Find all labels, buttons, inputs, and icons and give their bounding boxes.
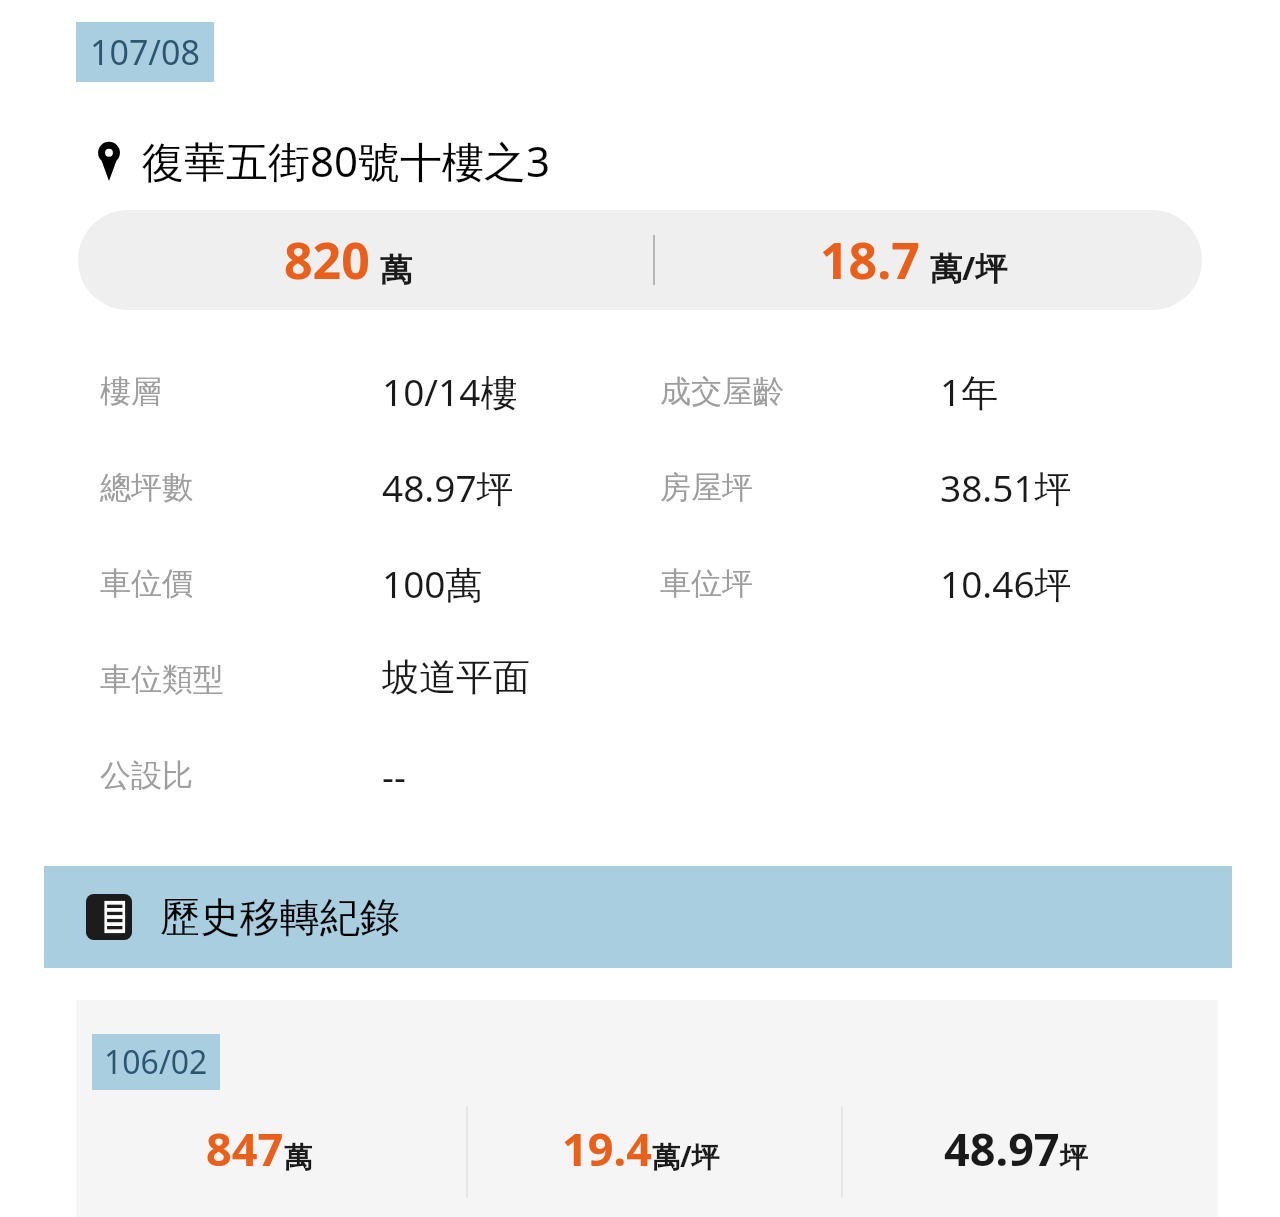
- staticText: 107/08: [90, 29, 200, 75]
- staticText: 847: [206, 1118, 284, 1179]
- staticText: 車位坪: [660, 564, 753, 603]
- staticText: 車位價: [100, 564, 193, 603]
- staticText: 歷史移轉紀錄: [160, 892, 400, 942]
- staticText: 復華五街80號十樓之3: [142, 132, 551, 189]
- staticText: 48.97坪: [382, 462, 514, 513]
- staticText: 公設比: [100, 756, 193, 795]
- other: History transfer records: [86, 894, 132, 940]
- staticText: 成交屋齡: [660, 372, 784, 411]
- staticText: 房屋坪: [660, 468, 753, 507]
- staticText: 1年: [940, 366, 999, 417]
- staticText: 10.46坪: [940, 558, 1072, 609]
- button[interactable]: Location: [96, 132, 551, 189]
- staticText: 坡道平面: [382, 654, 530, 701]
- staticText: 萬/坪: [930, 246, 1008, 290]
- staticText: 18.7: [820, 226, 920, 294]
- staticText: 總坪數: [100, 468, 193, 507]
- other: Location: [96, 141, 122, 181]
- staticText: 樓層: [100, 372, 162, 411]
- button[interactable]: History transfer records: [44, 866, 1232, 968]
- staticText: 38.51坪: [940, 462, 1072, 513]
- staticText: 100萬: [382, 558, 483, 609]
- staticText: 車位類型: [100, 660, 224, 699]
- staticText: 萬: [284, 1140, 312, 1175]
- button[interactable]: 106/02: [76, 1000, 1218, 1217]
- staticText: 19.4: [562, 1118, 652, 1179]
- staticText: 106/02: [104, 1040, 208, 1084]
- staticText: 48.97: [944, 1118, 1060, 1179]
- staticText: 萬: [380, 250, 412, 290]
- button[interactable]: 820: [78, 210, 1202, 310]
- staticText: 萬/坪: [652, 1137, 720, 1175]
- staticText: 坪: [1060, 1140, 1088, 1175]
- staticText: --: [382, 750, 406, 800]
- staticText: 10/14樓: [382, 366, 518, 417]
- staticText: 820: [284, 226, 370, 294]
